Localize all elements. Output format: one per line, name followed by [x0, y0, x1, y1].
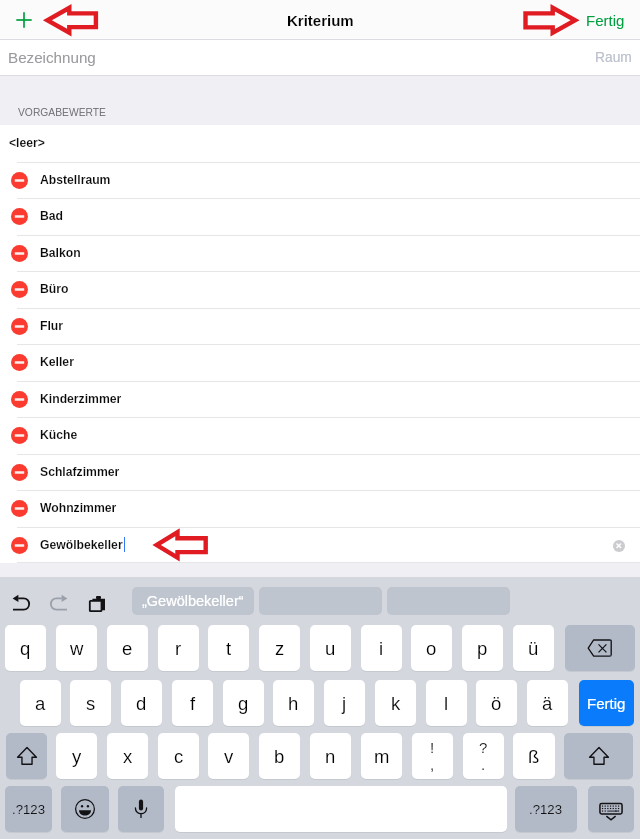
button[interactable]: Eintrag löschen	[0, 490, 640, 527]
button[interactable]: h	[273, 680, 314, 726]
button[interactable]: v	[208, 733, 249, 779]
button[interactable]: m	[361, 733, 402, 779]
button[interactable]: w	[56, 625, 97, 671]
button[interactable]: Eintrag löschen	[0, 344, 640, 381]
button[interactable]: Eintrag löschen	[11, 172, 28, 189]
staticText: m	[374, 746, 390, 767]
staticText: l	[444, 693, 449, 714]
button[interactable]: Eintrag löschen	[0, 271, 640, 308]
button[interactable]: x	[107, 733, 148, 779]
button[interactable]: .?123	[5, 786, 52, 832]
staticText: t	[226, 638, 232, 659]
button[interactable]: Emoji	[61, 786, 109, 832]
button[interactable]: p	[462, 625, 503, 671]
staticText: ö	[491, 693, 502, 714]
button[interactable]: k	[375, 680, 416, 726]
button[interactable]: Bezeichnung	[0, 40, 640, 75]
staticText: w	[70, 638, 84, 659]
button[interactable]: Eintrag löschen	[0, 454, 640, 491]
button[interactable]: Diktieren	[118, 786, 164, 832]
button[interactable]: Eintrag löschen	[0, 198, 640, 235]
button[interactable]: g	[223, 680, 264, 726]
button[interactable]: Einsetzen	[85, 591, 109, 615]
staticText: Balkon	[40, 246, 81, 260]
staticText: !	[430, 739, 435, 756]
staticText: i	[379, 638, 384, 659]
staticText: .	[481, 756, 486, 773]
staticText: Keller	[40, 355, 74, 369]
button[interactable]: .?123	[515, 786, 577, 832]
button[interactable]: r	[158, 625, 199, 671]
button[interactable]: ß	[513, 733, 555, 779]
button[interactable]: ä	[527, 680, 568, 726]
button[interactable]: s	[70, 680, 111, 726]
button[interactable]: ü	[513, 625, 554, 671]
staticText: c	[174, 746, 184, 767]
button[interactable]: Tastatur ausblenden	[588, 786, 634, 832]
button[interactable]: Eintrag löschen	[11, 537, 28, 554]
button[interactable]: b	[259, 733, 300, 779]
button[interactable]: o	[411, 625, 452, 671]
staticText: y	[72, 746, 82, 767]
button[interactable]: Eintrag löschen	[0, 417, 640, 454]
button[interactable]: Umschalttaste	[564, 733, 633, 779]
staticText: k	[391, 693, 401, 714]
staticText: d	[136, 693, 147, 714]
button[interactable]: Eintrag löschen	[0, 235, 640, 272]
button[interactable]: Eintrag löschen	[11, 208, 28, 225]
button[interactable]: j	[324, 680, 365, 726]
staticText: Abstellraum	[40, 173, 111, 187]
staticText: b	[274, 746, 285, 767]
button[interactable]: Eintrag löschen	[11, 281, 28, 298]
button[interactable]: a	[20, 680, 61, 726]
staticText: Bad	[40, 209, 64, 223]
button[interactable]: Wiederholen	[46, 591, 72, 615]
button[interactable]: <leer>	[0, 125, 640, 162]
button[interactable]: Rückschritt	[565, 625, 635, 671]
staticText: Küche	[40, 428, 78, 442]
button[interactable]: Umschalttaste	[6, 733, 47, 779]
button[interactable]: f	[172, 680, 213, 726]
button[interactable]: z	[259, 625, 300, 671]
button[interactable]: y	[56, 733, 97, 779]
button[interactable]: i	[361, 625, 402, 671]
staticText: ?	[479, 739, 488, 756]
button[interactable]: „Gewölbekeller“	[132, 587, 254, 615]
button[interactable]: d	[121, 680, 162, 726]
staticText: z	[275, 638, 285, 659]
staticText: ä	[542, 693, 553, 714]
button[interactable]: Eintrag löschen	[11, 354, 28, 371]
staticText: Gewölbekeller	[40, 538, 123, 552]
button[interactable]: l	[426, 680, 467, 726]
button[interactable]: Fertig	[579, 680, 634, 726]
button[interactable]: ?	[463, 733, 504, 779]
button[interactable]: t	[208, 625, 249, 671]
button[interactable]: Hinzufügen	[4, 0, 44, 39]
staticText: r	[175, 638, 182, 659]
button[interactable]: Eintrag löschen	[11, 391, 28, 408]
staticText: x	[123, 746, 133, 767]
button[interactable]: Text löschen	[613, 540, 625, 552]
button[interactable]: Eintrag löschen	[11, 427, 28, 444]
staticText: Wohnzimmer	[40, 501, 117, 515]
staticText: q	[20, 638, 31, 659]
button[interactable]: Eintrag löschen	[11, 500, 28, 517]
button[interactable]: e	[107, 625, 148, 671]
button[interactable]: Eintrag löschen	[11, 464, 28, 481]
button[interactable]: c	[158, 733, 199, 779]
button[interactable]: n	[310, 733, 351, 779]
button[interactable]: u	[310, 625, 351, 671]
button[interactable]: Eintrag löschen	[0, 162, 640, 199]
button[interactable]: ö	[476, 680, 517, 726]
button[interactable]: Eintrag löschen	[11, 318, 28, 335]
button[interactable]: Eintrag löschen	[0, 308, 640, 345]
button[interactable]: Eintrag löschen	[11, 245, 28, 262]
button[interactable]: q	[5, 625, 46, 671]
button[interactable]: Fertig	[574, 0, 640, 39]
button[interactable]: !	[412, 733, 453, 779]
button[interactable]: Widerrufen	[8, 591, 34, 615]
button[interactable]: Eintrag löschen	[0, 381, 640, 418]
